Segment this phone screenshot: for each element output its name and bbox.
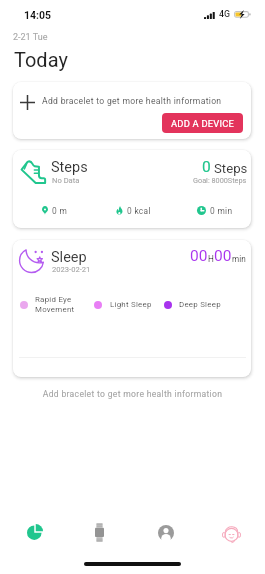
staticText: 0 m — [52, 206, 68, 216]
staticText: 2023-02-21 — [52, 265, 91, 274]
staticText: 00 — [214, 247, 232, 265]
staticText: 14:05 — [24, 9, 52, 21]
staticText: Steps — [214, 161, 248, 176]
button[interactable]: Add bracelet to get more health informat… — [13, 82, 251, 139]
staticText: 00 — [190, 247, 208, 265]
staticText: 0 kcal — [127, 206, 151, 216]
staticText: Rapid Eye Movement — [35, 295, 75, 313]
button[interactable]: Support — [208, 516, 255, 552]
staticText: Deep Sleep — [179, 300, 221, 309]
staticText: No Data — [52, 176, 80, 185]
staticText: 0 — [202, 158, 211, 176]
staticText: min — [232, 254, 246, 264]
staticText: Steps — [51, 159, 88, 176]
staticText: Light Sleep — [110, 300, 152, 309]
button[interactable]: Profile — [144, 516, 188, 550]
staticText: Add bracelet to get more health informat… — [0, 389, 265, 399]
staticText: 2-21 Tue — [13, 32, 48, 43]
staticText: Sleep — [51, 249, 87, 266]
staticText: Today — [14, 48, 68, 71]
staticText: Goal: 8000Steps — [193, 176, 247, 185]
button[interactable]: Statistics — [13, 515, 57, 549]
staticText: Add bracelet to get more health informat… — [42, 96, 222, 106]
button[interactable]: Device — [81, 514, 118, 551]
staticText: H — [208, 254, 214, 264]
staticText: 4G — [219, 9, 230, 19]
staticText: ADD A DEVICE — [171, 118, 235, 129]
staticText: 0 min — [210, 206, 233, 216]
button[interactable]: ADD A DEVICE — [162, 113, 243, 133]
